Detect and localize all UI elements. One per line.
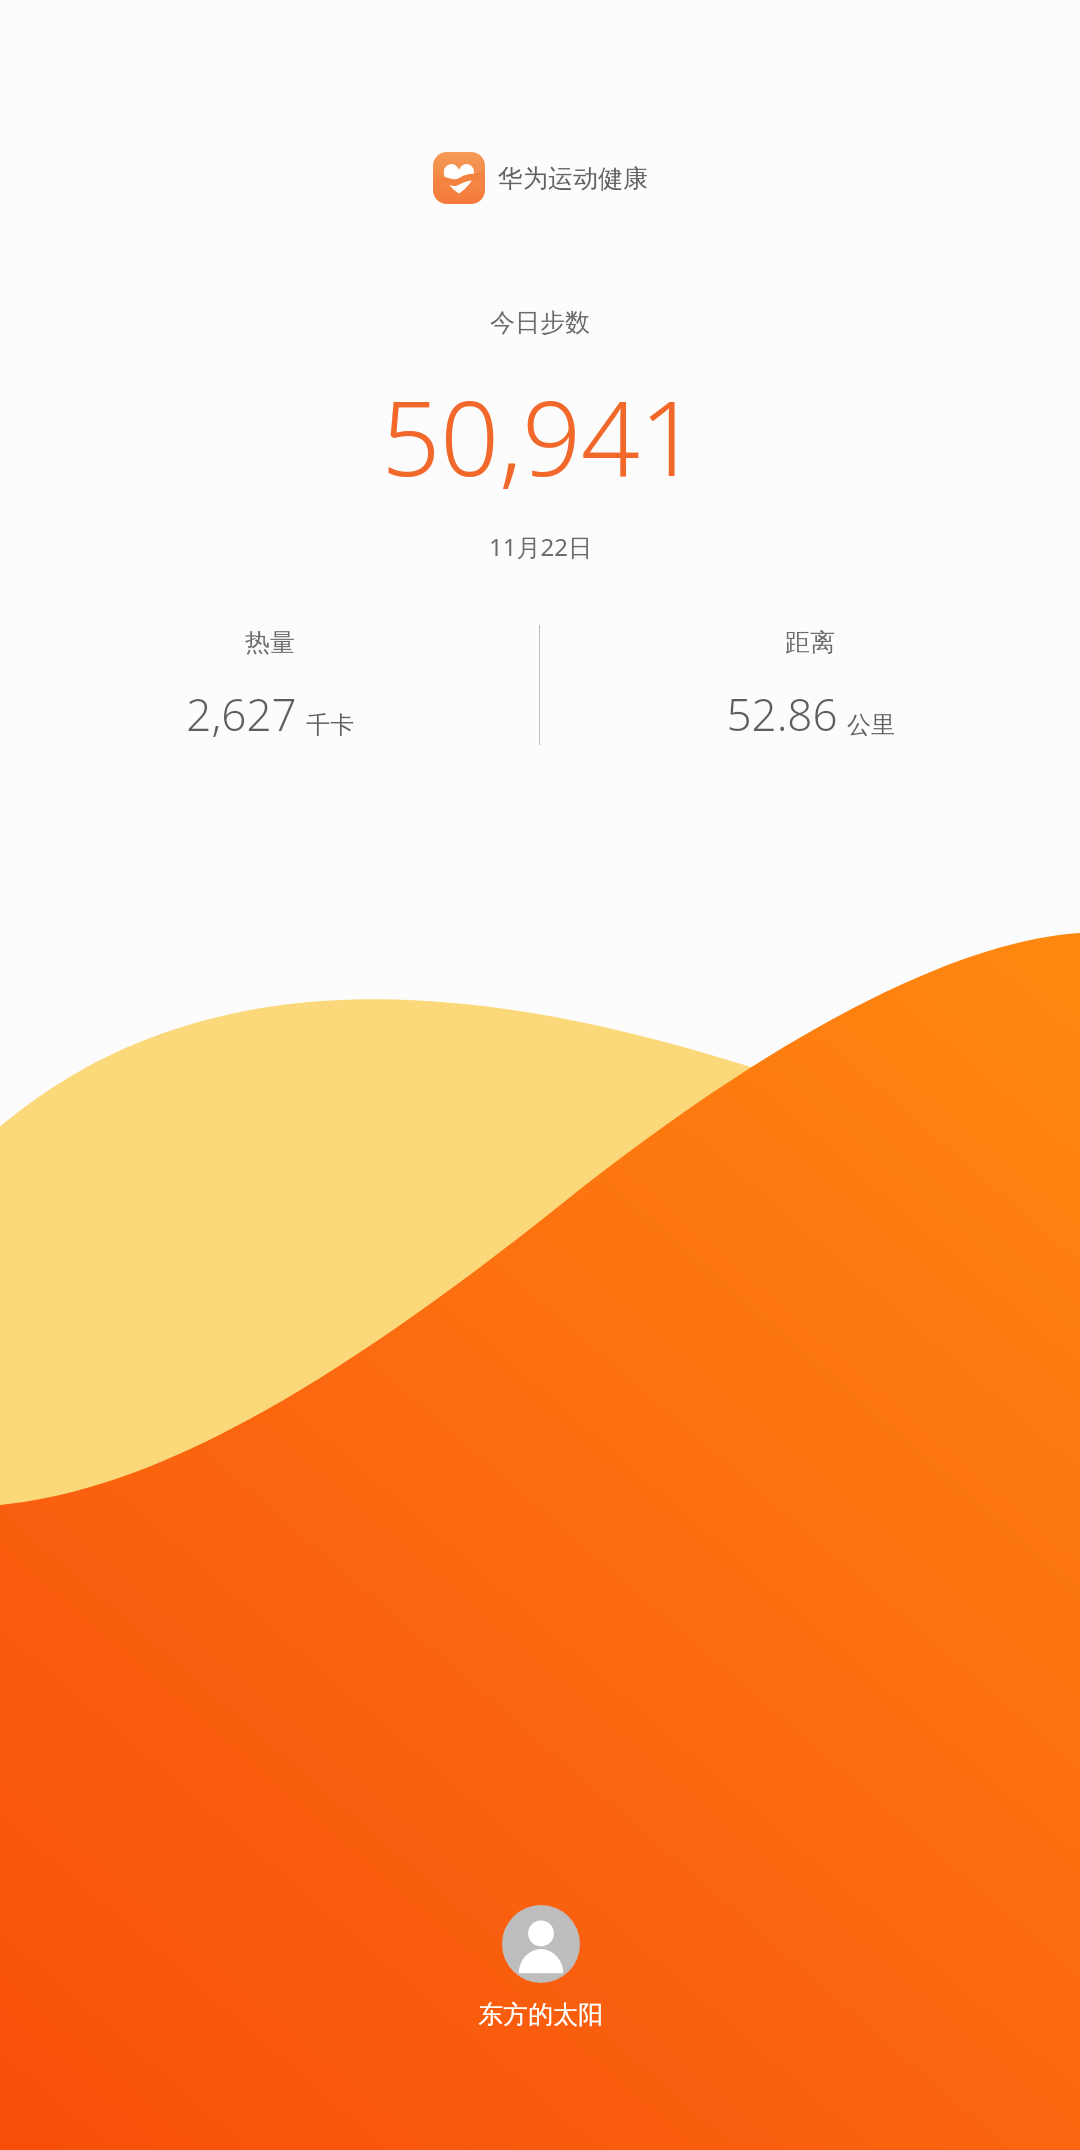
- staticText: 11月22日: [489, 530, 592, 563]
- staticText: 今日步数: [490, 307, 590, 338]
- button[interactable]: Huawei Health: [433, 152, 648, 204]
- button[interactable]: User avatar: [502, 1905, 580, 1983]
- button[interactable]: 热量: [0, 625, 539, 745]
- staticText: 热量: [245, 627, 295, 658]
- button[interactable]: Huawei Health: [433, 152, 485, 204]
- staticText: 50,941: [381, 366, 699, 506]
- staticText: 距离: [785, 627, 835, 658]
- button[interactable]: 距离: [540, 625, 1080, 745]
- staticText: 东方的太阳: [478, 1999, 603, 2030]
- staticText: 千卡: [306, 710, 354, 740]
- staticText: 华为运动健康: [498, 163, 648, 194]
- button[interactable]: User avatar: [478, 1905, 603, 2030]
- staticText: 公里: [847, 710, 895, 740]
- staticText: 2,627: [186, 684, 297, 744]
- staticText: 52.86: [726, 684, 838, 744]
